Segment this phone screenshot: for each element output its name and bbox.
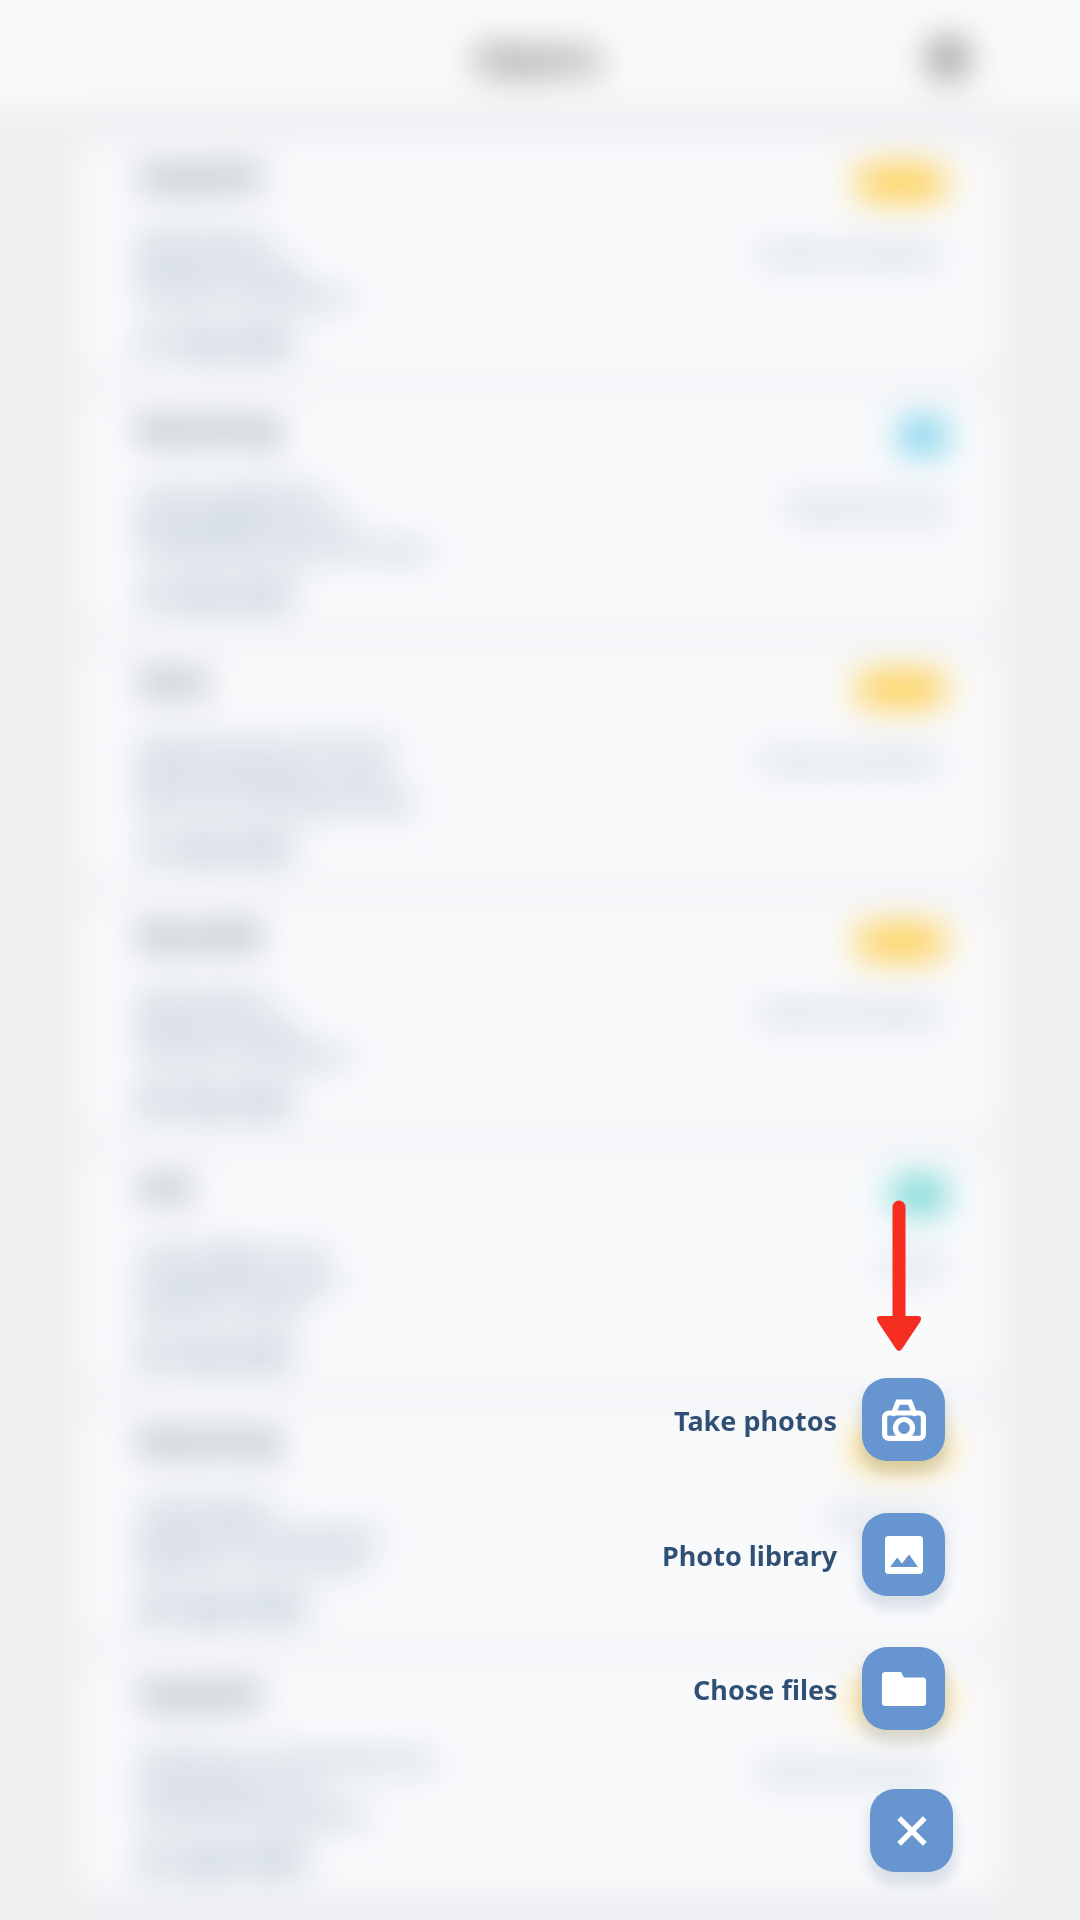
staticText: Info	[138, 1169, 194, 1206]
staticText: Mitarbeiter	[138, 982, 274, 1016]
button[interactable]: Take photos	[862, 1378, 945, 1461]
staticText: Termin vereinbart	[138, 1038, 353, 1072]
staticText: Abstimmung Termine	[138, 729, 397, 763]
staticText: Notiz	[883, 1248, 945, 1282]
staticText: abgenommen durch	[138, 1516, 382, 1550]
button[interactable]: Photo library	[862, 1513, 945, 1596]
staticText: Bauantrag	[138, 1422, 280, 1459]
staticText: Unterlagen neu	[138, 1235, 326, 1269]
staticText: Rückfragen zur	[138, 1769, 320, 1803]
staticText: 09. Mai 2021	[138, 1083, 296, 1118]
staticText: Baustelle	[138, 916, 264, 953]
button[interactable]: Take photos	[0, 1394, 838, 1446]
staticText: Projektleitung und Team	[138, 532, 433, 566]
staticText: Objekte	[474, 37, 602, 81]
staticText: eingereicht beim	[138, 1263, 341, 1297]
staticText: Büro per Mail gesendet	[138, 785, 418, 819]
button[interactable]: Chose files	[862, 1647, 945, 1730]
staticText: Ausführung geklärt	[138, 1797, 372, 1831]
staticText: 02. Mai 2021	[138, 1336, 296, 1371]
staticText: Leistungen	[138, 1488, 272, 1522]
staticText: Termin vereinbart	[138, 279, 353, 313]
staticText: Mitarbeiter	[138, 223, 274, 257]
staticText: 25. April 2021	[138, 1842, 310, 1877]
staticText: Gespräch	[138, 1675, 264, 1712]
button[interactable]: Chose files	[0, 1663, 838, 1715]
staticText: Gespräch	[138, 157, 264, 194]
staticText: Notiz	[138, 663, 210, 700]
staticText: 18. Mai 2021	[138, 577, 296, 612]
staticText: Bauamt Stadt	[138, 1291, 302, 1325]
staticText: Abnahme	[831, 1501, 945, 1535]
staticText: 28. April 2021	[138, 1589, 310, 1624]
staticText: Chose files	[693, 1671, 838, 1708]
staticText: Bauantrag	[138, 410, 280, 447]
staticText: Besprechung	[138, 1010, 296, 1044]
staticText: 14. Mai 2021	[138, 830, 296, 865]
staticText: Besprechung	[138, 251, 296, 285]
staticText: Bauherr und Planer	[138, 1544, 373, 1578]
staticText: Baubegehung mit	[138, 504, 354, 538]
button[interactable]: Close menu	[870, 1789, 953, 1872]
staticText: Leistungsphase	[138, 476, 326, 510]
staticText: 21. Mai 2021	[138, 324, 296, 359]
button[interactable]: Photo library	[0, 1529, 838, 1581]
staticText: Take photos	[674, 1402, 838, 1439]
staticText: Telefonat mit Bauleitung	[138, 1741, 434, 1775]
staticText: Photo library	[662, 1537, 838, 1574]
